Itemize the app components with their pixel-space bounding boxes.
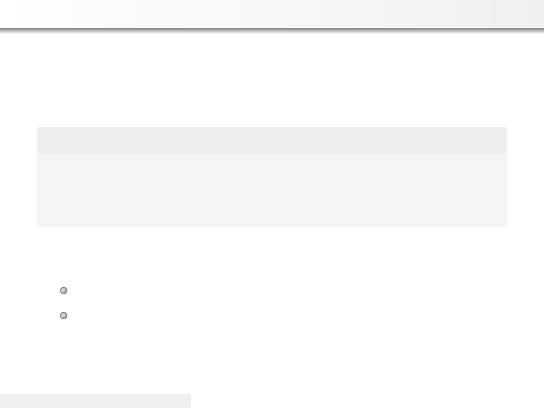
button[interactable]: Content card — [37, 127, 507, 227]
button[interactable]: Option two — [59, 311, 69, 321]
button[interactable]: App bar — [0, 0, 544, 27]
button[interactable]: Option one — [59, 286, 69, 296]
